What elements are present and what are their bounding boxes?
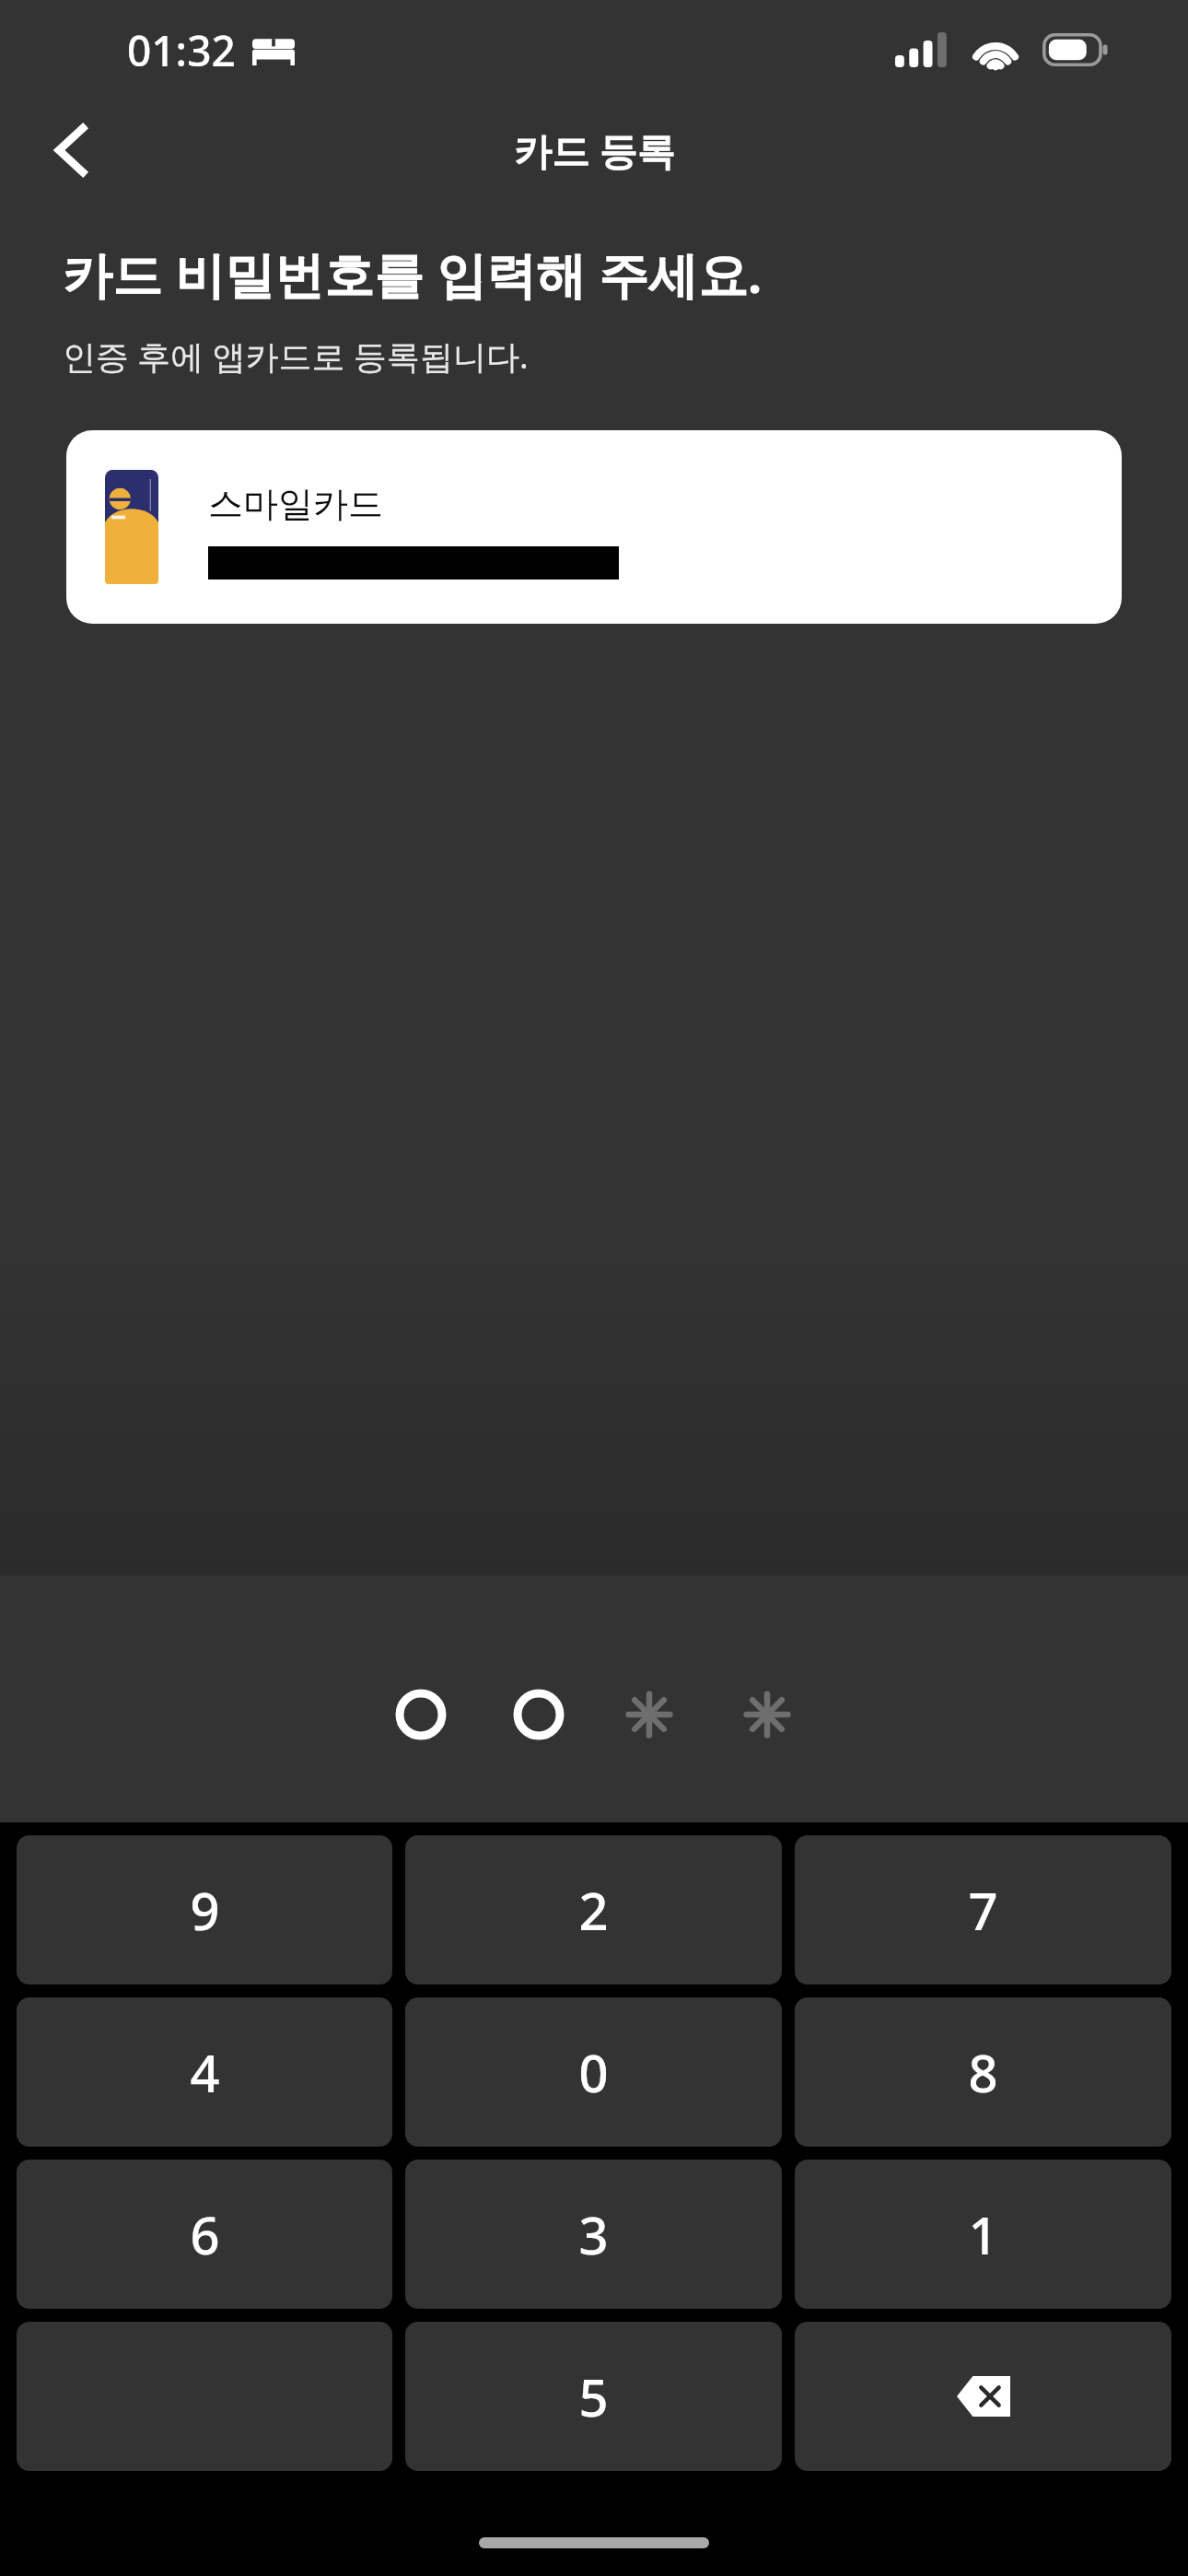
staticText: 9 (190, 1875, 220, 1945)
staticText: 스마일카드 (208, 482, 383, 526)
button[interactable]: 9 (17, 1835, 392, 1985)
staticText: 5 (578, 2361, 609, 2431)
button[interactable]: 5 (405, 2322, 782, 2471)
staticText: 0 (578, 2037, 609, 2107)
staticText: 카드 비밀번호를 입력해 주세요. (63, 240, 763, 308)
staticText: 1 (968, 2199, 998, 2269)
staticText: 2 (578, 1875, 609, 1945)
staticText: 4 (190, 2037, 220, 2107)
button[interactable]: 8 (795, 1997, 1171, 2147)
staticText: 8 (968, 2037, 998, 2107)
button[interactable]: Back (31, 111, 111, 190)
button[interactable]: 6 (17, 2160, 392, 2309)
button[interactable]: 스마일카드 (66, 430, 1122, 624)
button[interactable]: Delete (795, 2322, 1171, 2471)
button[interactable]: 0 (405, 1997, 782, 2147)
button[interactable]: 7 (795, 1835, 1171, 1985)
staticText: 인증 후에 앱카드로 등록됩니다. (63, 334, 529, 379)
staticText: 3 (578, 2199, 609, 2269)
button[interactable]: 1 (795, 2160, 1171, 2309)
staticText: 7 (968, 1875, 998, 1945)
staticText: 01:32 (127, 21, 236, 79)
staticText: 6 (190, 2199, 220, 2269)
button[interactable]: 2 (405, 1835, 782, 1985)
button[interactable]: 3 (405, 2160, 782, 2309)
button[interactable]: 4 (17, 1997, 392, 2147)
staticText: 카드 등록 (514, 124, 675, 176)
